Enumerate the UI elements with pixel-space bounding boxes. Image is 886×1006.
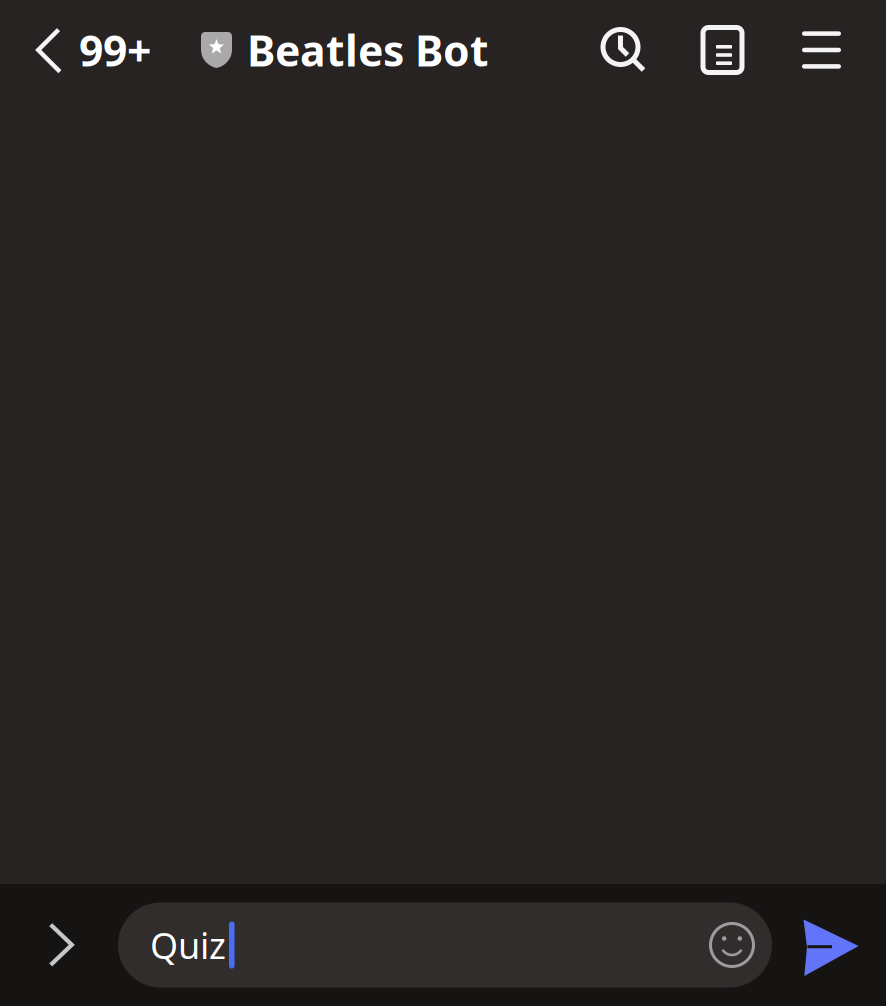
button[interactable]: Menu xyxy=(772,0,871,100)
button[interactable]: 99+ xyxy=(0,0,181,100)
button[interactable]: Search message history xyxy=(574,0,673,100)
button[interactable]: Beatles Bot xyxy=(181,0,497,100)
staticText: Beatles Bot xyxy=(247,22,489,78)
button[interactable]: Attachment menu xyxy=(30,884,92,1006)
button[interactable]: Saved messages xyxy=(673,0,772,100)
staticText: 99+ xyxy=(79,22,151,78)
button[interactable]: Quiz xyxy=(118,902,772,987)
staticText: Quiz xyxy=(150,921,226,969)
button[interactable]: Send xyxy=(800,884,862,1006)
